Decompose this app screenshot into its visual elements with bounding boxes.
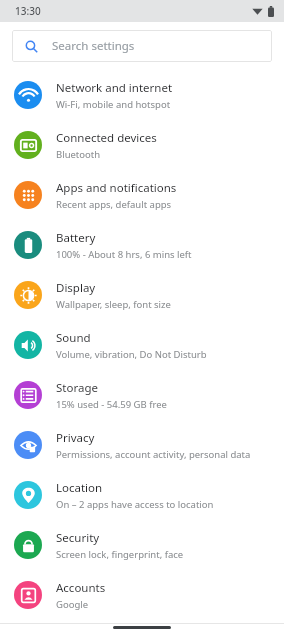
staticText: Accounts xyxy=(56,580,106,596)
staticText: Security xyxy=(56,530,100,546)
button[interactable]: Network and internet xyxy=(0,70,284,120)
staticText: Privacy xyxy=(56,430,95,446)
staticText: Permissions, account activity, personal … xyxy=(56,448,251,461)
button[interactable]: Search settings xyxy=(12,30,272,62)
other: Connected devices xyxy=(14,131,42,159)
other: Battery xyxy=(14,231,42,259)
other: Accounts xyxy=(14,581,42,609)
staticText: Wallpaper, sleep, font size xyxy=(56,298,171,311)
staticText: Screen lock, fingerprint, face xyxy=(56,548,184,561)
button[interactable]: Display xyxy=(0,270,284,320)
staticText: Bluetooth xyxy=(56,148,101,161)
button[interactable]: Apps and notifications xyxy=(0,170,284,220)
other: Privacy xyxy=(14,431,42,459)
staticText: Battery xyxy=(56,230,96,246)
other: Network and internet xyxy=(14,81,42,109)
staticText: Network and internet xyxy=(56,80,173,96)
button[interactable]: Location xyxy=(0,470,284,520)
staticText: Wi-Fi, mobile and hotspot xyxy=(56,98,171,111)
staticText: Location xyxy=(56,480,103,496)
other: Sound xyxy=(14,331,42,359)
other: Location xyxy=(14,481,42,509)
button[interactable]: Accounts xyxy=(0,570,284,620)
staticText: Search settings xyxy=(52,38,135,54)
staticText: On – 2 apps have access to location xyxy=(56,498,214,511)
staticText: 100% - About 8 hrs, 6 mins left xyxy=(56,248,192,261)
staticText: Volume, vibration, Do Not Disturb xyxy=(56,348,207,361)
other: Storage xyxy=(14,381,42,409)
staticText: 15% used - 54.59 GB free xyxy=(56,398,167,411)
button[interactable]: Connected devices xyxy=(0,120,284,170)
staticText: Connected devices xyxy=(56,130,157,146)
button[interactable]: Battery xyxy=(0,220,284,270)
button[interactable]: Sound xyxy=(0,320,284,370)
staticText: Display xyxy=(56,280,96,296)
other: Security xyxy=(14,531,42,559)
staticText: Apps and notifications xyxy=(56,180,177,196)
staticText: Storage xyxy=(56,380,98,396)
button[interactable]: Security xyxy=(0,520,284,570)
other: Display xyxy=(14,281,42,309)
button[interactable]: Privacy xyxy=(0,420,284,470)
staticText: Google xyxy=(56,598,89,611)
other: Apps and notifications xyxy=(14,181,42,209)
staticText: Recent apps, default apps xyxy=(56,198,172,211)
staticText: 13:30 xyxy=(15,4,41,18)
staticText: Sound xyxy=(56,330,91,346)
button[interactable]: Storage xyxy=(0,370,284,420)
